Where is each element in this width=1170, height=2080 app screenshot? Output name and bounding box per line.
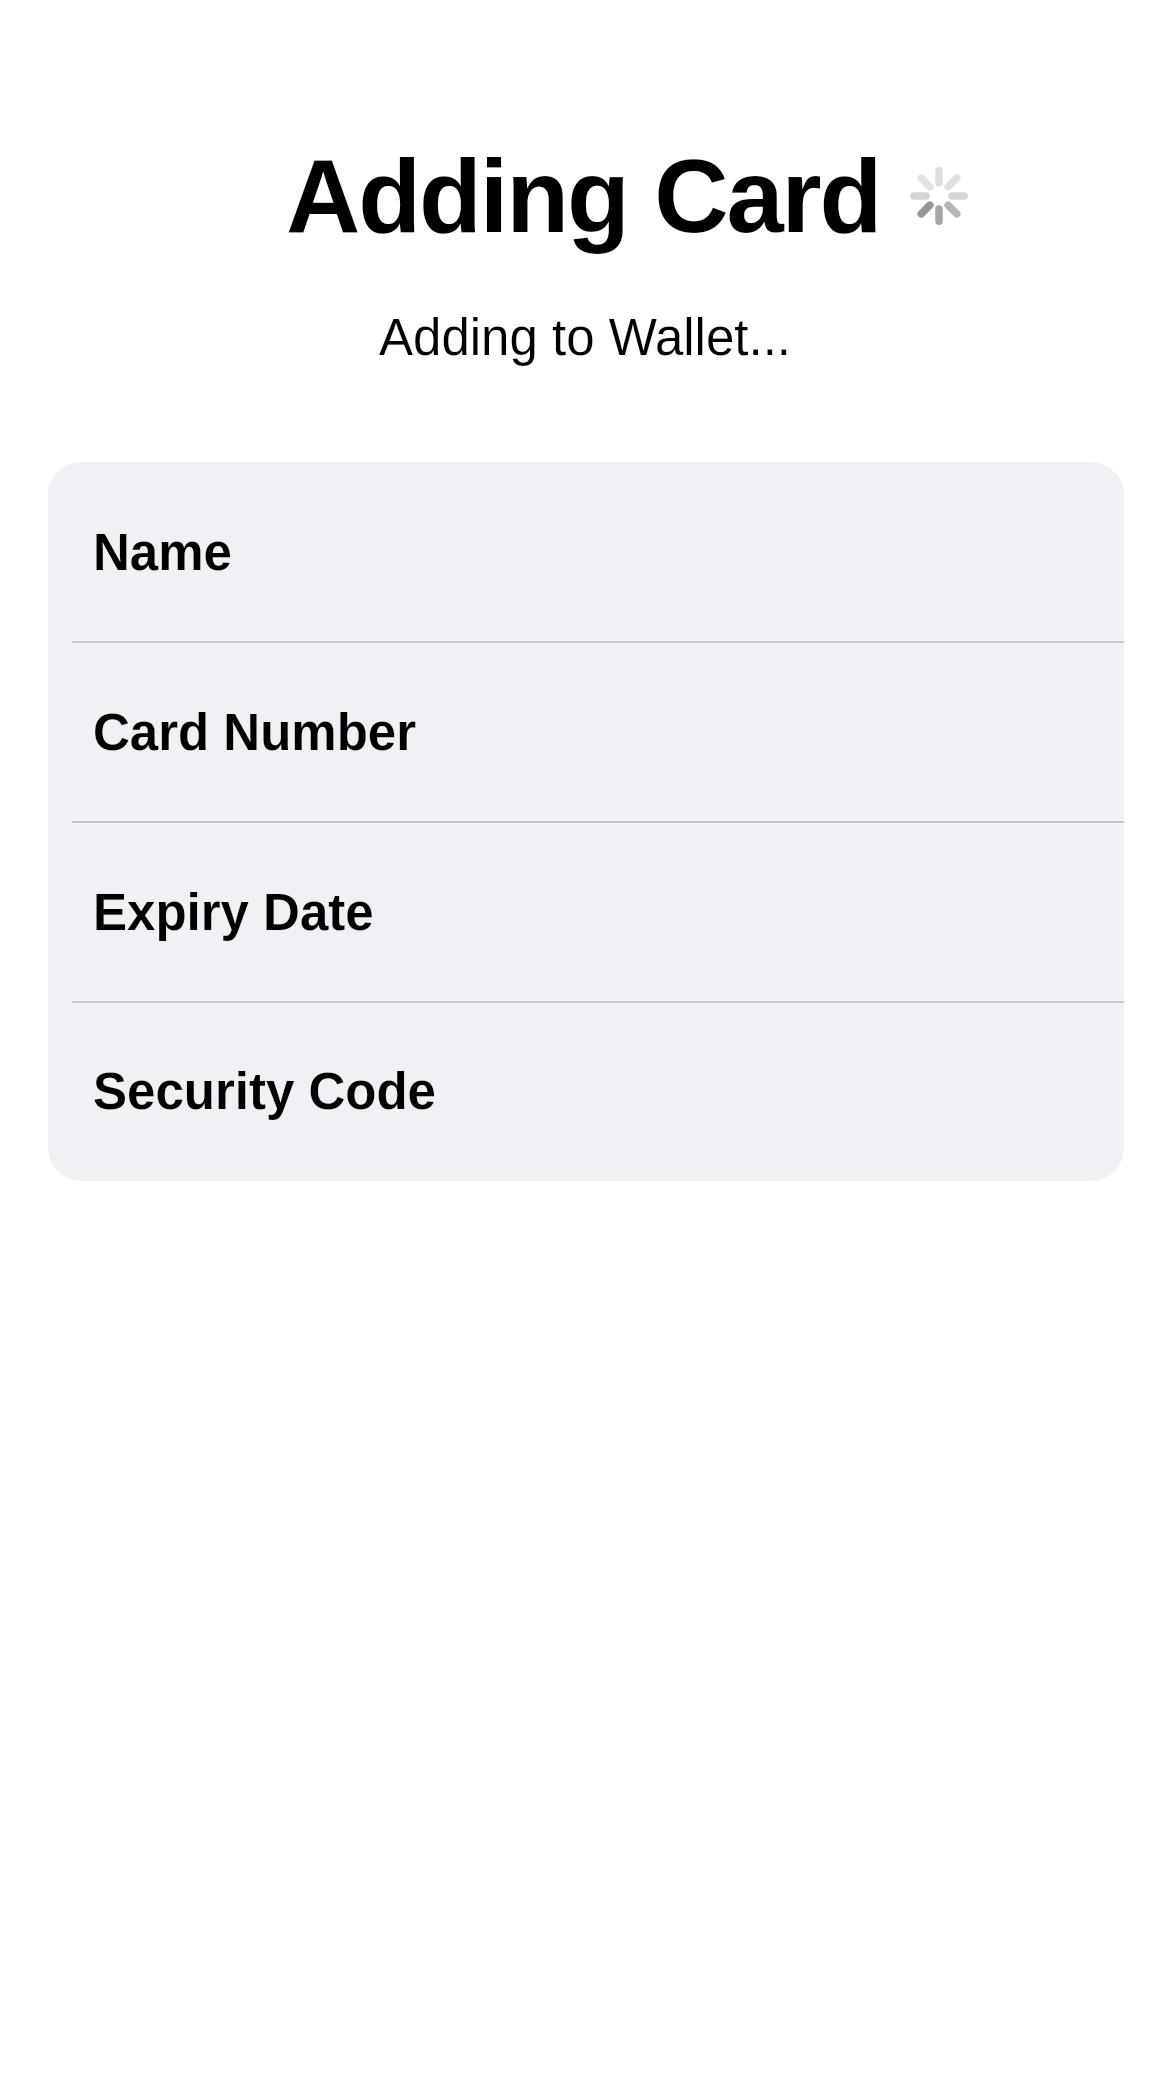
- staticText: Name: [93, 524, 232, 581]
- button[interactable]: Expiry Date: [48, 822, 1124, 1002]
- other: Loading: [909, 166, 969, 226]
- staticText: Adding to Wallet...: [379, 309, 791, 366]
- staticText: Adding Card: [286, 139, 881, 254]
- button[interactable]: Name: [48, 462, 1124, 642]
- button[interactable]: Card Number: [48, 642, 1124, 822]
- staticText: Expiry Date: [93, 884, 374, 941]
- button[interactable]: Security Code: [48, 1001, 1124, 1181]
- staticText: Card Number: [93, 704, 417, 761]
- staticText: Security Code: [93, 1063, 436, 1120]
